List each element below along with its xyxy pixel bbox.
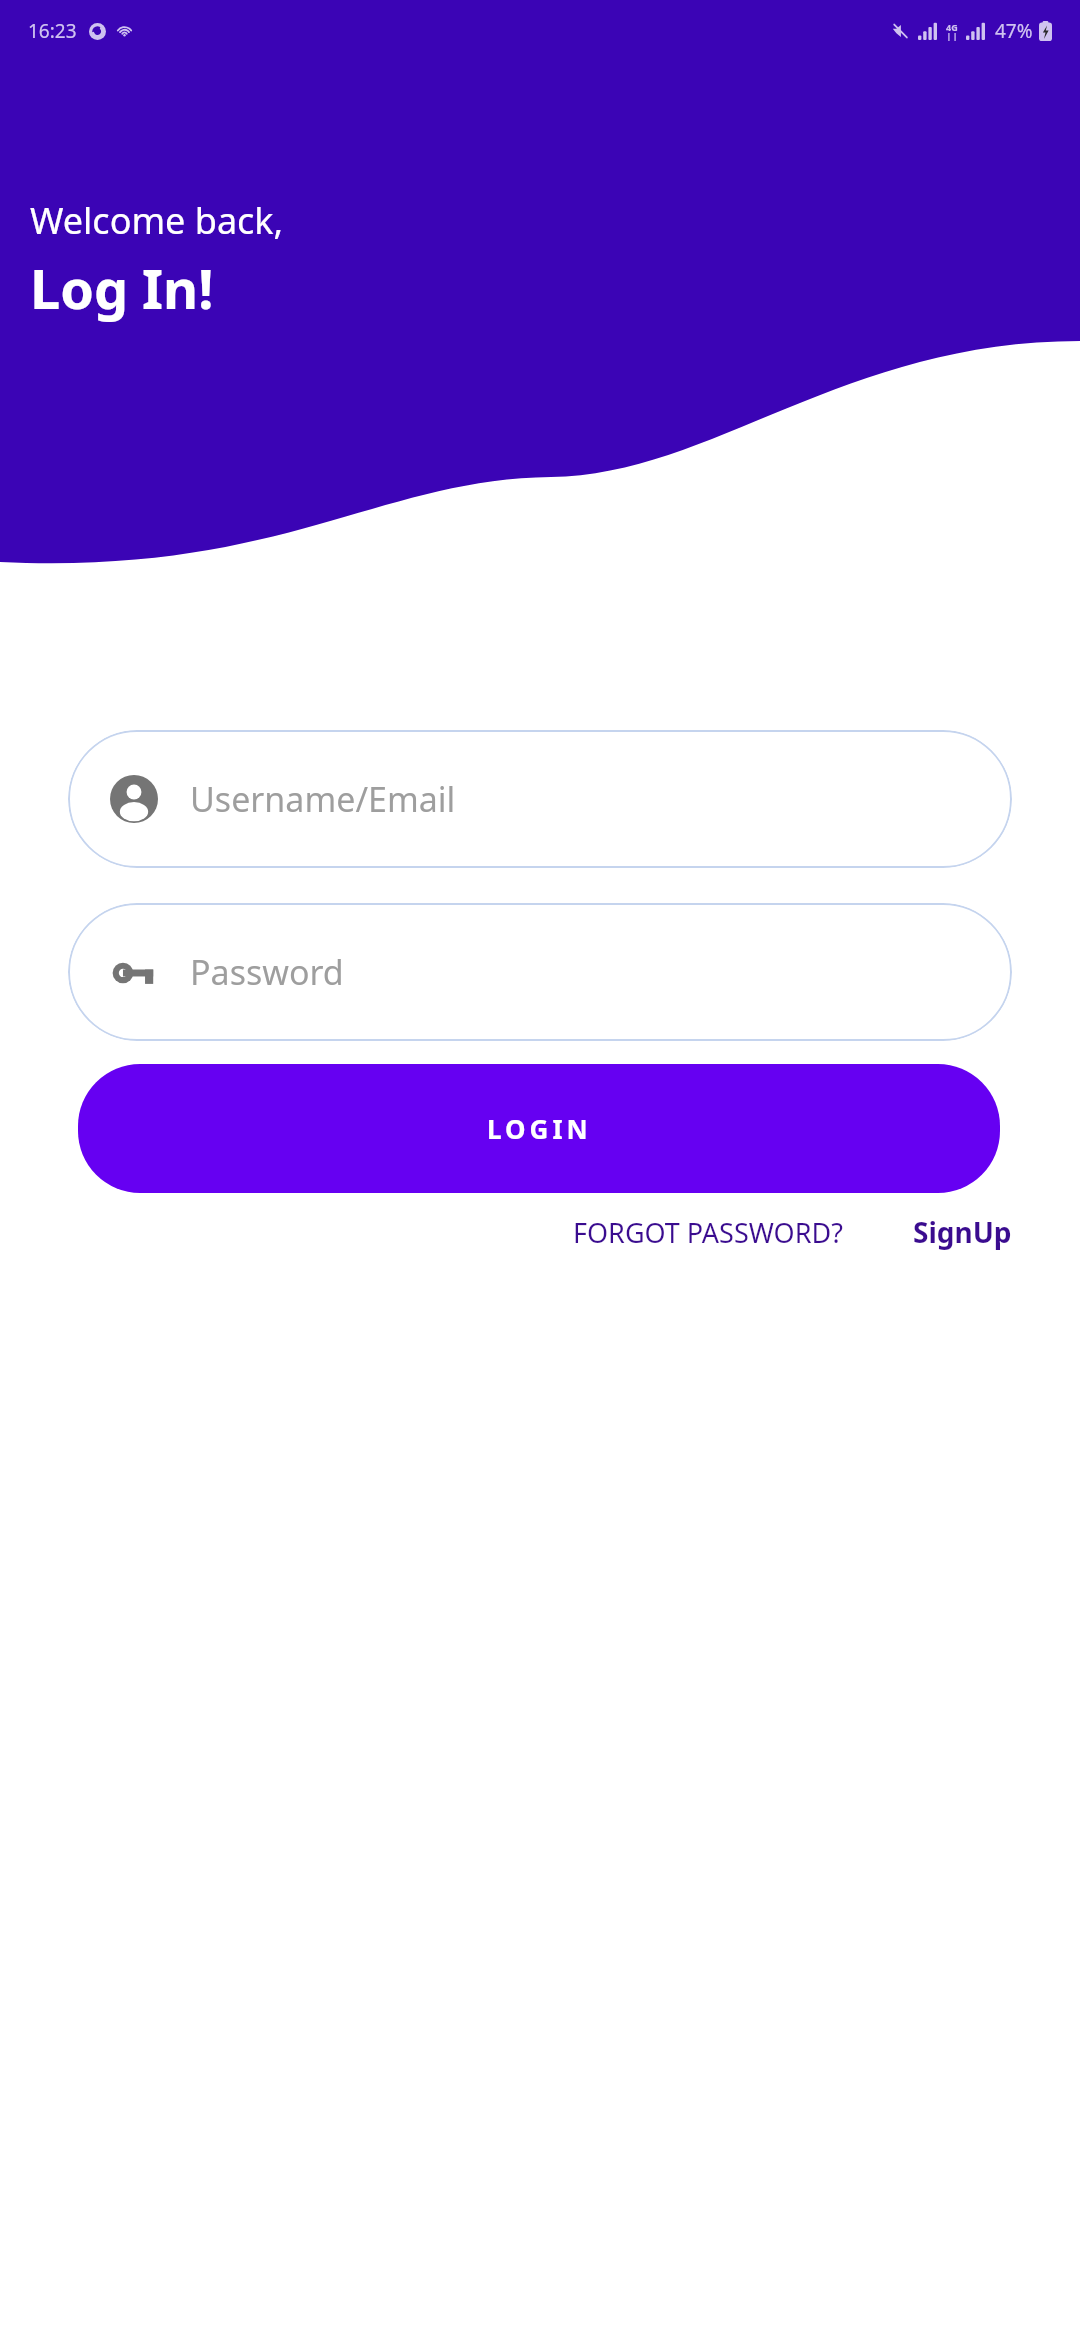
staticText: LOGIN — [487, 1111, 592, 1146]
button[interactable]: Username/Email — [68, 730, 1012, 868]
button[interactable]: LOGIN — [78, 1064, 1000, 1193]
staticText: 47% — [995, 18, 1033, 44]
button[interactable]: SignUp — [907, 1207, 1018, 1257]
staticText: SignUp — [913, 1213, 1012, 1251]
staticText: 4G — [946, 21, 958, 33]
staticText: FORGOT PASSWORD? — [573, 1214, 843, 1251]
staticText: Username/Email — [190, 776, 456, 822]
staticText: Log In! — [30, 251, 214, 325]
staticText: 16:23 — [28, 18, 77, 44]
button[interactable]: FORGOT PASSWORD? — [567, 1208, 849, 1257]
button[interactable]: Password — [68, 903, 1012, 1041]
staticText: Password — [190, 949, 344, 995]
staticText: Welcome back, — [30, 196, 284, 245]
